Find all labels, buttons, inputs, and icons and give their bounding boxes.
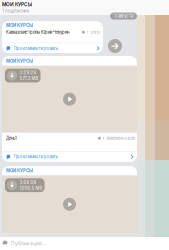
staticText: 1000.5 MB — [19, 185, 42, 191]
staticText: Прокомментировать — [13, 46, 57, 51]
staticText: МОИ КУРСЫ — [6, 58, 33, 64]
button[interactable]: Attach — [2, 240, 8, 247]
staticText: 1 подписчик — [2, 8, 29, 13]
button[interactable]: Прокомментировать — [2, 152, 137, 162]
staticText: МОИ КУРСЫ — [6, 168, 33, 173]
staticText: МОИ КУРСЫ — [2, 1, 32, 7]
staticText: 3:06:08 — [19, 180, 36, 185]
staticText: 3:29:29 — [19, 70, 36, 75]
staticText: 1 08:37 — [86, 30, 100, 35]
staticText: 3 августа — [114, 13, 133, 19]
button[interactable]: Download video — [5, 178, 44, 192]
staticText: 577.3 MB — [19, 76, 38, 81]
staticText: Публикация... — [11, 241, 45, 246]
staticText: МОИ КУРСЫ — [6, 23, 33, 28]
button[interactable]: Forward — [108, 39, 122, 53]
staticText: Кавказские тропы Юрий Чекурин — [6, 30, 69, 35]
staticText: Прокомментировать — [13, 154, 57, 159]
button[interactable]: Прокомментировать — [2, 43, 103, 54]
staticText: День1 — [6, 136, 17, 141]
button[interactable]: Download video — [5, 69, 40, 82]
staticText: 1 изменено 08:38 — [102, 136, 134, 141]
